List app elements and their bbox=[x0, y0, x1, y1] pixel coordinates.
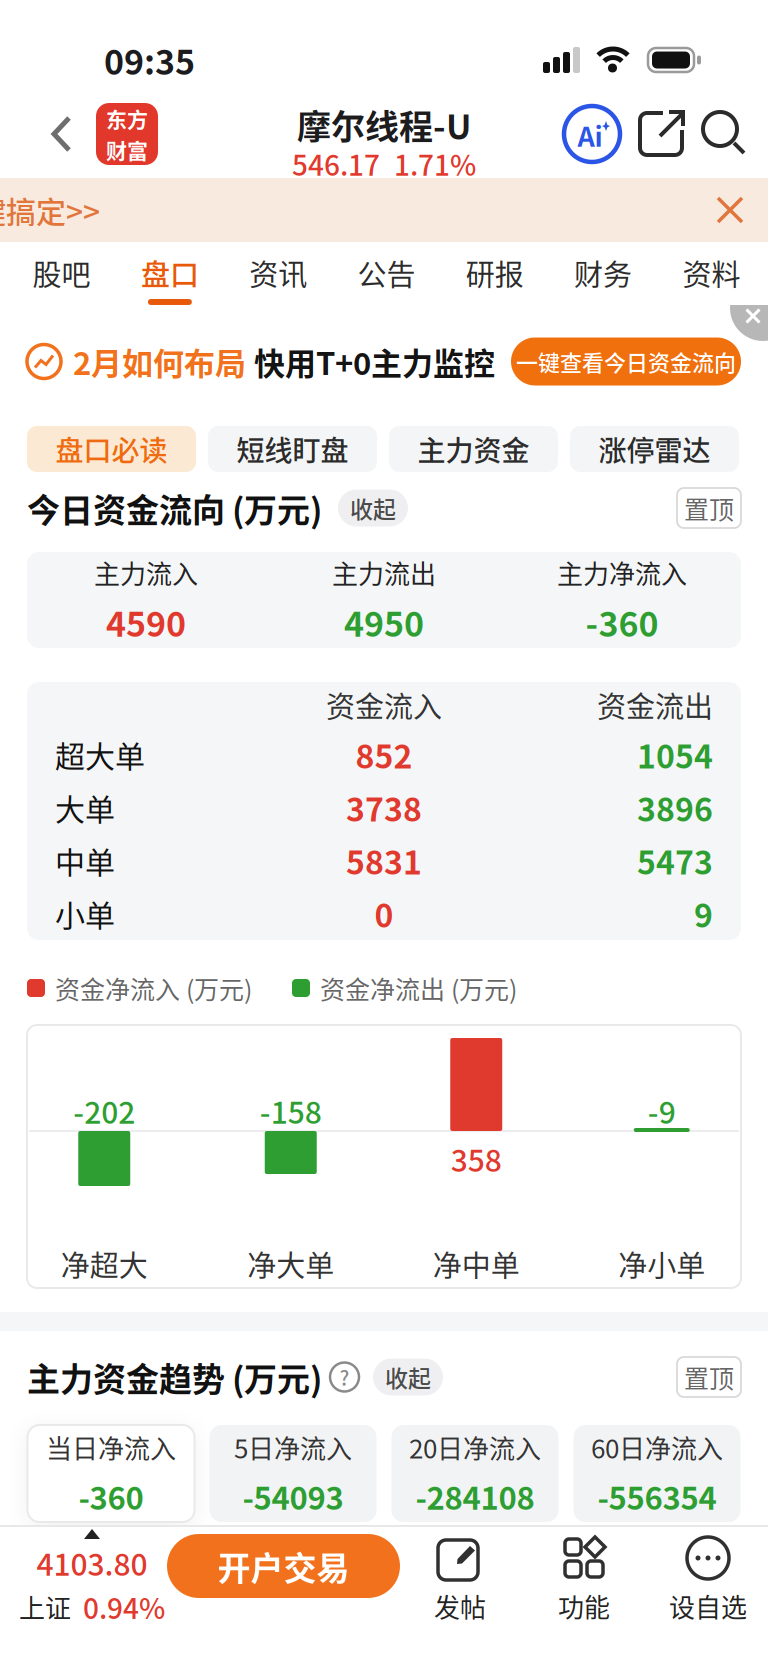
staticText: 键搞定>> bbox=[0, 188, 100, 232]
staticText: 开户交易 bbox=[217, 1542, 349, 1590]
staticText: 4590 bbox=[106, 597, 186, 646]
staticText: 546.17 bbox=[292, 143, 380, 184]
staticText: -158 bbox=[260, 1089, 322, 1132]
staticText: 当日净流入 bbox=[46, 1428, 176, 1466]
staticText: 主力资金 bbox=[417, 429, 529, 469]
staticText: 今日资金流向 (万元) bbox=[27, 484, 322, 532]
staticText: 盘口必读 bbox=[55, 429, 167, 469]
staticText: 0 bbox=[374, 890, 393, 937]
staticText: 852 bbox=[355, 731, 412, 778]
staticText: 快用T+0主力监控 bbox=[254, 339, 495, 384]
staticText: 358 bbox=[451, 1137, 502, 1180]
staticText: 财富 bbox=[106, 134, 148, 165]
staticText: 超大单 bbox=[55, 733, 145, 776]
staticText: 净大单 bbox=[247, 1243, 334, 1285]
staticText: 股吧 bbox=[33, 252, 91, 294]
staticText: 涨停雷达 bbox=[598, 429, 710, 469]
staticText: -202 bbox=[73, 1089, 135, 1132]
staticText: 中单 bbox=[55, 839, 115, 882]
staticText: 资金净流入 (万元) bbox=[55, 970, 252, 1006]
staticText: 置顶 bbox=[684, 1359, 734, 1395]
staticText: 资金净流出 (万元) bbox=[320, 970, 517, 1006]
staticText: 一键查看今日资金流向 bbox=[516, 346, 736, 377]
staticText: 主力流入 bbox=[94, 554, 198, 591]
staticText: -284108 bbox=[415, 1474, 534, 1519]
staticText: 2月如何布局 bbox=[73, 339, 246, 384]
staticText: 东方 bbox=[106, 103, 148, 133]
staticText: 公告 bbox=[357, 252, 415, 294]
staticText: 资金流出 bbox=[597, 684, 713, 726]
staticText: 净中单 bbox=[433, 1243, 520, 1285]
staticText: -9 bbox=[648, 1089, 676, 1132]
staticText: 收起 bbox=[350, 491, 396, 525]
staticText: -556354 bbox=[597, 1474, 716, 1519]
staticText: 资金流入 bbox=[326, 684, 442, 726]
staticText: 短线盯盘 bbox=[236, 429, 348, 469]
staticText: 大单 bbox=[55, 786, 115, 829]
staticText: -54093 bbox=[242, 1474, 343, 1519]
staticText: 60日净流入 bbox=[591, 1428, 723, 1466]
staticText: 收起 bbox=[385, 1360, 431, 1394]
staticText: 功能 bbox=[558, 1587, 610, 1625]
staticText: 上证 bbox=[19, 1588, 71, 1625]
staticText: 主力流出 bbox=[332, 554, 436, 591]
staticText: 资讯 bbox=[249, 252, 307, 294]
staticText: 1.71% bbox=[394, 143, 476, 184]
staticText: 盘口 bbox=[141, 252, 199, 294]
staticText: 3896 bbox=[637, 784, 713, 831]
staticText: 9 bbox=[694, 890, 713, 937]
staticText: 5日净流入 bbox=[234, 1428, 352, 1466]
staticText: 研报 bbox=[466, 252, 524, 294]
staticText: 1054 bbox=[637, 731, 713, 778]
staticText: 5473 bbox=[637, 837, 713, 884]
staticText: 4950 bbox=[344, 597, 424, 646]
staticText: 净超大 bbox=[61, 1243, 148, 1285]
staticText: -360 bbox=[585, 597, 658, 646]
staticText: 设自选 bbox=[669, 1587, 747, 1625]
staticText: 主力净流入 bbox=[557, 554, 687, 591]
staticText: 财务 bbox=[574, 252, 632, 294]
staticText: 置顶 bbox=[684, 490, 734, 526]
staticText: -360 bbox=[78, 1474, 143, 1519]
staticText: 4103.80 bbox=[36, 1541, 147, 1584]
staticText: 3738 bbox=[346, 784, 422, 831]
staticText: 摩尔线程-U bbox=[297, 100, 471, 149]
staticText: ? bbox=[339, 1362, 349, 1391]
staticText: 5831 bbox=[346, 837, 422, 884]
staticText: 资料 bbox=[682, 252, 740, 294]
staticText: 小单 bbox=[55, 892, 115, 935]
staticText: 20日净流入 bbox=[409, 1428, 541, 1466]
staticText: 09:35 bbox=[104, 35, 195, 85]
staticText: Ai bbox=[577, 115, 602, 155]
staticText: 发帖 bbox=[434, 1587, 486, 1625]
staticText: 净小单 bbox=[618, 1243, 705, 1285]
staticText: 0.94% bbox=[83, 1586, 165, 1627]
staticText: 主力资金趋势 (万元) bbox=[27, 1353, 322, 1401]
